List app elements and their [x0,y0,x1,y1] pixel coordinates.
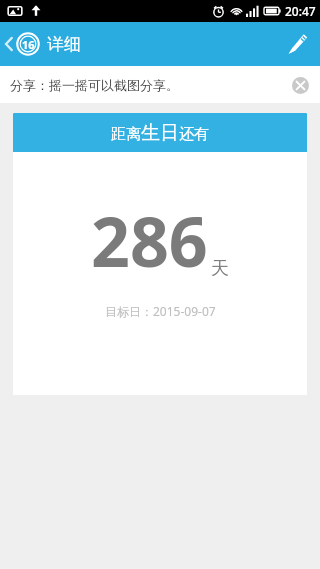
button[interactable]: Close [286,71,314,99]
staticText: 距离生日还有 [111,121,209,145]
button[interactable]: 距离生日还有 [13,113,307,395]
staticText: 详细 [47,34,81,55]
button[interactable]: Edit [276,22,320,66]
staticText: 16 [22,37,35,52]
button[interactable]: 16 [0,28,89,60]
staticText: 20:47 [285,3,316,19]
staticText: 目标日：2015-09-07 [105,303,216,319]
staticText: 286 [91,194,208,287]
staticText: 分享：摇一摇可以截图分享。 [10,77,179,93]
staticText: 天 [211,257,229,280]
